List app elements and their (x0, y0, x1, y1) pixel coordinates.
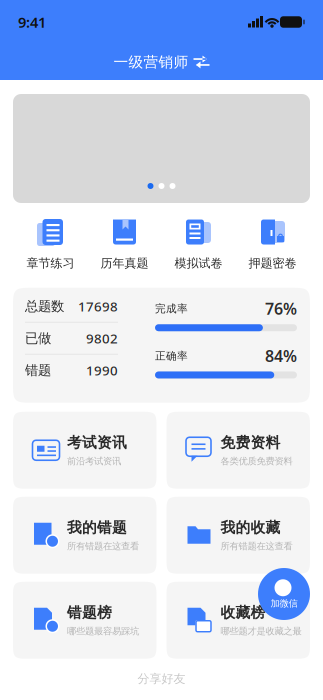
staticText: 我的错题 (67, 518, 127, 536)
staticText: 加微信 (270, 598, 297, 609)
button[interactable]: 押题密卷 (235, 219, 309, 271)
staticText: 所有错题在这查看 (67, 540, 139, 552)
button[interactable]: 我的错题 (13, 497, 156, 574)
staticText: 9:41 (18, 12, 46, 32)
button[interactable]: 模拟试卷 (161, 219, 235, 271)
staticText: 17698 (78, 297, 118, 315)
staticText: 押题密卷 (248, 256, 296, 271)
button[interactable]: 一级营销师 (113, 44, 209, 80)
staticText: 哪些题最容易踩坑 (67, 625, 139, 637)
staticText: 错题榜 (67, 603, 112, 621)
staticText: 我的收藏 (220, 518, 280, 536)
staticText: 分享好友 (137, 671, 185, 686)
staticText: 考试资讯 (67, 433, 127, 451)
staticText: 前沿考试资讯 (67, 455, 121, 467)
button[interactable]: 我的收藏 (166, 497, 310, 574)
staticText: 所有错题在这查看 (220, 540, 292, 552)
staticText: 各类优质免费资料 (220, 455, 292, 467)
staticText: 76% (265, 298, 297, 319)
staticText: 正确率 (155, 349, 188, 362)
staticText: 一级营销师 (113, 53, 188, 71)
button[interactable]: 考试资讯 (13, 412, 156, 489)
staticText: 已做 (25, 330, 51, 346)
button[interactable]: 历年真题 (87, 219, 161, 271)
staticText: 收藏榜 (220, 603, 265, 621)
staticText: 84% (265, 345, 297, 366)
button[interactable]: 错题榜 (13, 582, 156, 659)
staticText: 1990 (86, 361, 118, 379)
staticText: 总题数 (25, 298, 64, 314)
staticText: 历年真题 (100, 256, 148, 271)
staticText: 章节练习 (26, 256, 74, 271)
staticText: 错题 (25, 362, 51, 378)
button[interactable]: 免费资料 (166, 412, 310, 489)
button[interactable]: 收藏榜 (166, 582, 310, 659)
staticText: 模拟试卷 (174, 256, 222, 271)
staticText: 完成率 (155, 302, 188, 315)
staticText: 哪些题才是收藏之最 (220, 625, 301, 637)
staticText: 9802 (86, 329, 118, 347)
button[interactable]: 章节练习 (13, 219, 87, 271)
button[interactable]: 加微信 (258, 568, 310, 620)
staticText: 免费资料 (220, 433, 280, 451)
